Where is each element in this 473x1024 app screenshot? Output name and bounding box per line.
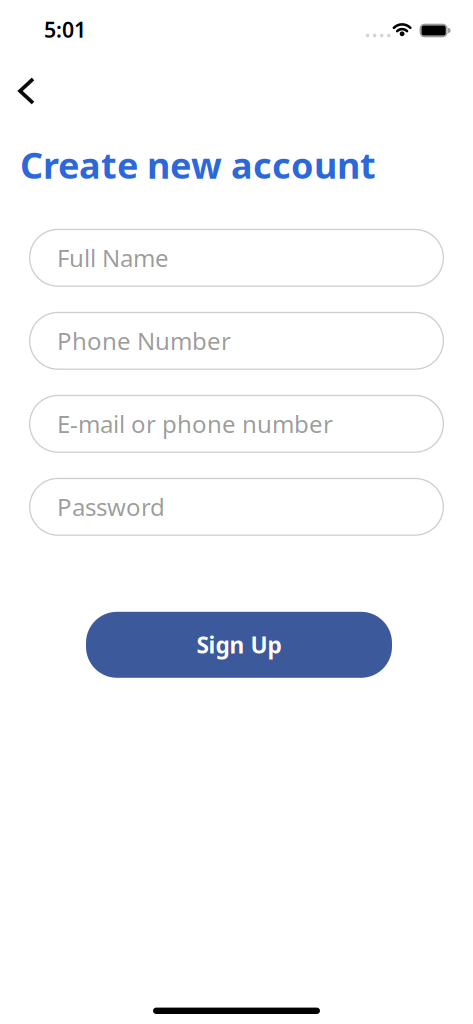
button[interactable]: Sign Up <box>86 612 392 678</box>
button[interactable]: E-mail or phone number <box>29 395 444 453</box>
button[interactable]: Full Name <box>29 229 444 287</box>
staticText: E-mail or phone number <box>57 408 333 440</box>
button[interactable]: Back <box>0 59 33 103</box>
staticText: Password <box>57 491 165 523</box>
staticText: Full Name <box>57 242 169 274</box>
staticText: Create new account <box>20 141 376 189</box>
staticText: 5:01 <box>44 15 86 44</box>
button[interactable]: Phone Number <box>29 312 444 370</box>
staticText: Sign Up <box>196 630 281 660</box>
button[interactable]: Password <box>29 478 444 536</box>
staticText: Phone Number <box>57 325 231 357</box>
